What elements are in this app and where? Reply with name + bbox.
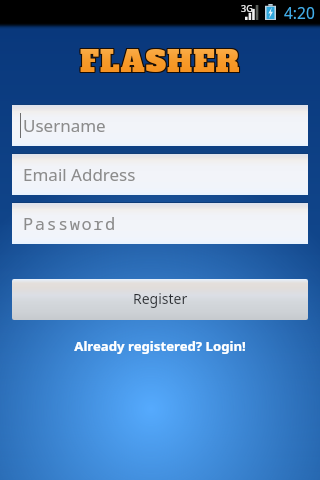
button[interactable]: Already registered? Login! [0, 337, 320, 355]
staticText: Register [133, 289, 188, 308]
staticText: Email Address [23, 163, 136, 186]
staticText: 3G [241, 2, 253, 14]
button[interactable]: Password [12, 203, 308, 244]
staticText: FLASHER [80, 40, 241, 81]
staticText: FLASHER [80, 41, 241, 82]
button[interactable]: Register [12, 279, 308, 320]
staticText: FLASHER [81, 41, 242, 82]
staticText: FLASHER [81, 42, 242, 83]
button[interactable]: Email Address [12, 154, 308, 195]
staticText: Username [23, 114, 106, 137]
button[interactable]: Username [12, 105, 308, 146]
staticText: Already registered? Login! [74, 337, 246, 355]
staticText: FLASHER [81, 40, 242, 81]
staticText: 4:20 [284, 2, 315, 23]
staticText: FLASHER [79, 40, 240, 81]
staticText: FLASHER [79, 41, 240, 82]
staticText: Password [23, 212, 117, 235]
staticText: FLASHER [80, 42, 241, 83]
staticText: FLASHER [79, 42, 240, 83]
